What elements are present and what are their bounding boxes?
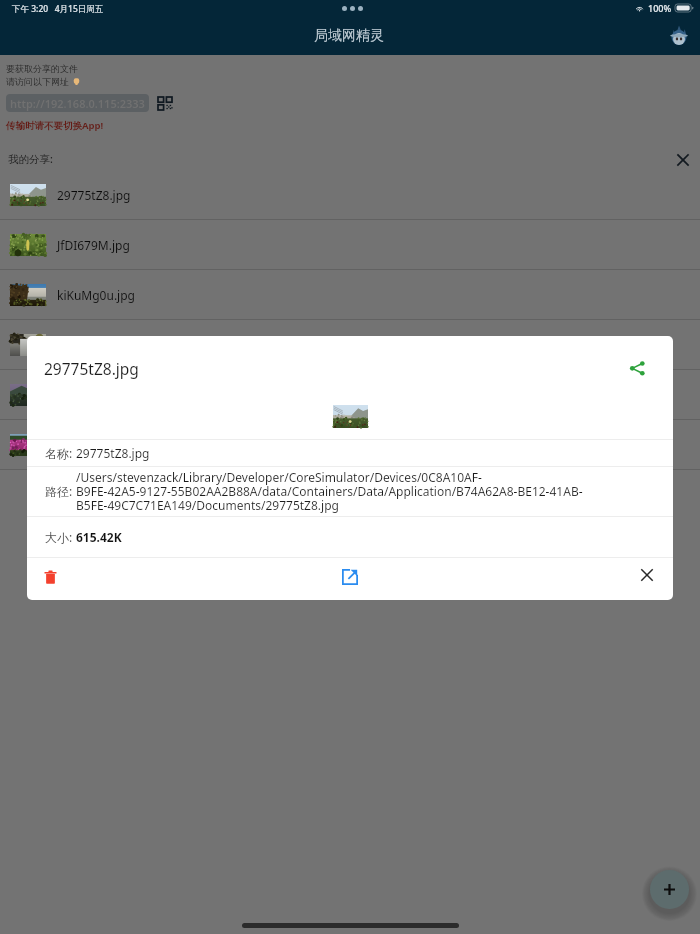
button[interactable]: Share	[629, 359, 647, 377]
button[interactable]: Qw7ZxYd3.jpg	[0, 420, 700, 470]
staticText: kiKuMg0u.jpg	[57, 287, 135, 303]
button[interactable]: Vb2kTmL9.jpg	[0, 370, 700, 420]
button[interactable]: Close shares	[671, 148, 695, 172]
button[interactable]: Close	[637, 565, 657, 585]
staticText: 请访问以下网址	[6, 75, 72, 87]
staticText: Qw7ZxYd3.jpg	[57, 437, 138, 453]
staticText: 名称:	[45, 445, 76, 461]
staticText: 615.42K	[76, 529, 122, 545]
staticText: 29775tZ8.jpg	[44, 358, 139, 379]
button[interactable]: App menu	[667, 24, 691, 48]
button[interactable]: JfDI679M.jpg	[0, 220, 700, 270]
button[interactable]: http://192.168.0.115:2333	[6, 94, 149, 112]
staticText: 大小:	[45, 529, 76, 545]
staticText: 100%	[648, 2, 672, 14]
staticText: /Users/stevenzack/Library/Developer/Core…	[76, 469, 583, 514]
staticText: 传输时请不要切换App!	[6, 119, 104, 132]
button[interactable]: kiKuMg0u.jpg	[0, 270, 700, 320]
button[interactable]: Delete	[41, 568, 60, 586]
button[interactable]: 29775tZ8.jpg	[0, 170, 700, 220]
staticText: 下午 3:20 4月15日周五	[12, 3, 104, 15]
button[interactable]: Show QR code	[158, 97, 172, 110]
staticText: 要获取分享的文件	[6, 63, 78, 74]
button[interactable]: Add	[650, 870, 689, 909]
staticText: 我的分享:	[8, 152, 53, 166]
staticText: 29775tZ8.jpg	[76, 445, 150, 461]
button[interactable]: Open	[342, 569, 358, 585]
staticText: http://192.168.0.115:2333	[10, 96, 145, 111]
staticText: 局域网精灵	[314, 27, 384, 45]
staticText: 路径:	[45, 483, 76, 499]
button[interactable]: Ns8RcPq1.jpg	[0, 320, 700, 370]
staticText: JfDI679M.jpg	[57, 237, 130, 253]
staticText: 29775tZ8.jpg	[57, 187, 131, 203]
